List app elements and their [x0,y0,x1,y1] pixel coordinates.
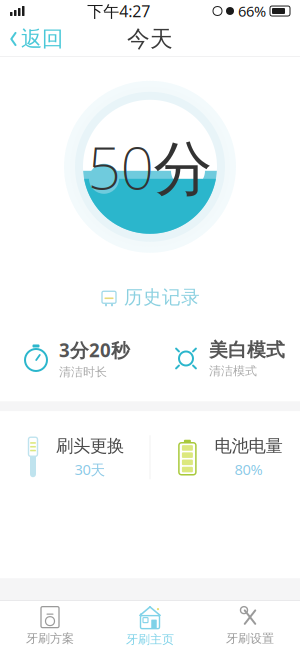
button[interactable]: 牙刷设置 [200,601,300,649]
staticText: 50分 [87,128,212,206]
staticText: 80% [234,460,262,479]
staticText: 美白模式 [209,339,285,362]
staticText: 返回 [21,26,63,52]
button[interactable]: 返回 [0,20,63,58]
button[interactable]: 牙刷主页 [100,600,200,649]
button[interactable]: 电池电量 [150,427,300,487]
staticText: 电池电量 [214,435,282,457]
staticText: 下午4:27 [87,0,150,22]
staticText: 牙刷主页 [126,632,174,647]
staticText: 今天 [127,25,173,53]
button[interactable]: 历史记录 [90,281,210,314]
staticText: 30天 [74,460,105,479]
staticText: 清洁模式 [209,364,257,378]
button[interactable]: 美白模式 [150,333,300,384]
staticText: 3分20秒 [59,338,130,362]
button[interactable]: 牙刷方案 [0,601,100,649]
staticText: 刷头更换 [56,435,124,457]
staticText: 历史记录 [124,286,200,309]
staticText: 66% [238,1,266,21]
staticText: 清洁时长 [59,364,107,379]
button[interactable]: 3分20秒 [0,332,150,385]
staticText: 牙刷设置 [226,631,274,646]
staticText: 牙刷方案 [26,631,74,646]
button[interactable]: 刷头更换 [0,427,150,487]
